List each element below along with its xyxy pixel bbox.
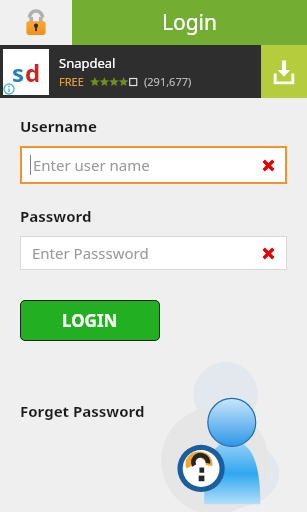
- staticText: LOGIN: [62, 309, 118, 332]
- button[interactable]: Forget Password: [20, 401, 145, 421]
- staticText: s: [12, 56, 25, 89]
- staticText: Enter user name: [33, 155, 150, 175]
- staticText: (291,677): [144, 74, 192, 89]
- button[interactable]: Enter Passsword: [20, 236, 287, 270]
- staticText: Enter Passsword: [32, 243, 149, 263]
- staticText: Password: [20, 206, 92, 226]
- staticText: Login: [162, 8, 218, 37]
- button[interactable]: Enter user name: [20, 146, 287, 184]
- button[interactable]: s: [0, 45, 307, 98]
- staticText: d: [25, 56, 41, 89]
- staticText: Forget Password: [20, 401, 145, 421]
- staticText: Username: [20, 116, 97, 136]
- other: App icon: [0, 0, 72, 45]
- staticText: Snapdeal: [59, 54, 116, 72]
- button[interactable]: Install: [261, 45, 307, 98]
- button[interactable]: LOGIN: [20, 300, 160, 341]
- staticText: FREE: [59, 74, 84, 89]
